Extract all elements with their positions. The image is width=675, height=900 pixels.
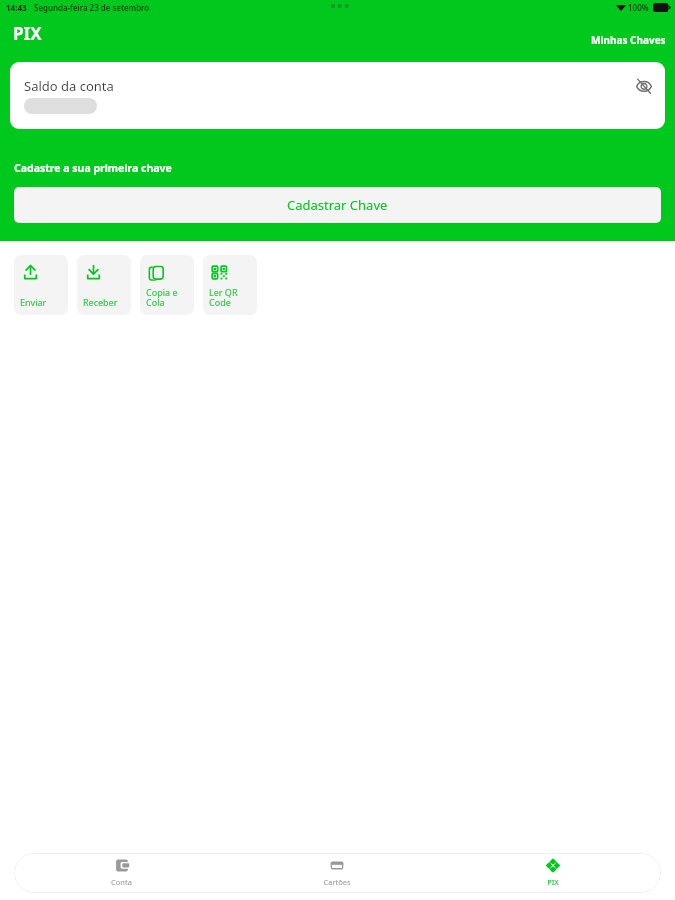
staticText: 14:43 [6, 2, 27, 13]
button[interactable]: Cartões [229, 853, 445, 893]
staticText: Minhas Chaves [591, 33, 666, 47]
staticText: Cartões [323, 877, 351, 887]
button[interactable]: Mostrar saldo [636, 77, 652, 95]
button[interactable]: Conta [14, 853, 229, 893]
staticText: Saldo da conta [24, 77, 114, 95]
button[interactable]: Saldo da conta [10, 62, 665, 129]
staticText: Segunda-feira 23 de setembro [34, 2, 150, 13]
staticText: 100% [628, 2, 649, 13]
button[interactable]: Ler QR Code [203, 255, 257, 315]
staticText: Conta [111, 877, 132, 887]
staticText: Cadastre a sua primeira chave [14, 161, 172, 175]
staticText: Cadastrar Chave [287, 196, 388, 214]
staticText: Enviar [20, 296, 47, 308]
staticText: PIX [547, 877, 559, 887]
staticText: Copia e Cola [146, 286, 178, 308]
button[interactable]: Enviar [14, 255, 68, 315]
staticText: Receber [83, 296, 118, 308]
button[interactable]: PIX [445, 853, 661, 893]
button[interactable]: Receber [77, 255, 131, 315]
staticText: PIX [13, 22, 42, 44]
staticText: Ler QR Code [209, 286, 238, 308]
button[interactable]: Copia e Cola [140, 255, 194, 315]
button[interactable]: Minhas Chaves [591, 33, 666, 47]
button[interactable]: Cadastrar Chave [14, 187, 661, 223]
